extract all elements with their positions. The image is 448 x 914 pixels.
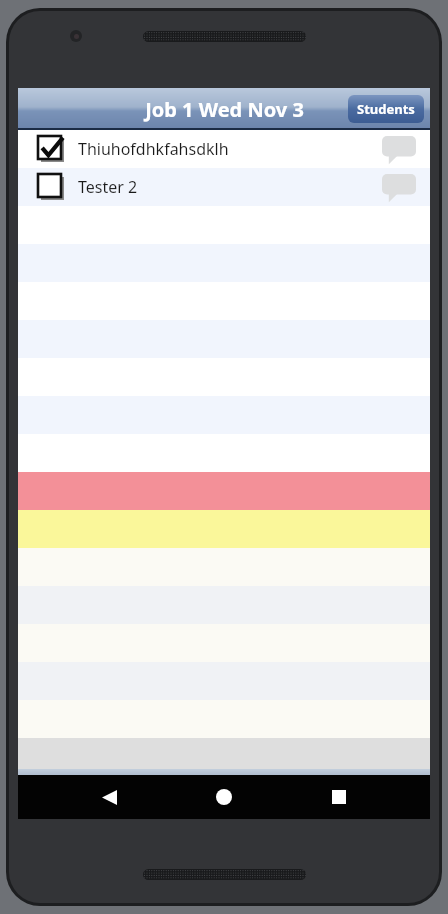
staticText: Job 1 Wed Nov 3 [145,96,304,123]
staticText: Thiuhofdhkfahsdklh [78,138,229,160]
button[interactable]: Home [207,780,241,814]
button[interactable]: Job [192,777,230,807]
button[interactable]: Tester 2 [18,168,430,206]
staticText: Students [357,100,415,118]
button[interactable]: Add [108,777,148,807]
button[interactable]: Thiuhofdhkfahsdklh [18,130,430,168]
button[interactable]: Students [348,95,424,123]
staticText: Job [201,783,222,801]
button[interactable]: Comment [382,172,416,202]
button[interactable]: Recents [322,780,356,814]
button[interactable]: Back [92,780,126,814]
button[interactable]: Comment [382,134,416,164]
staticText: Tester 2 [78,176,138,198]
